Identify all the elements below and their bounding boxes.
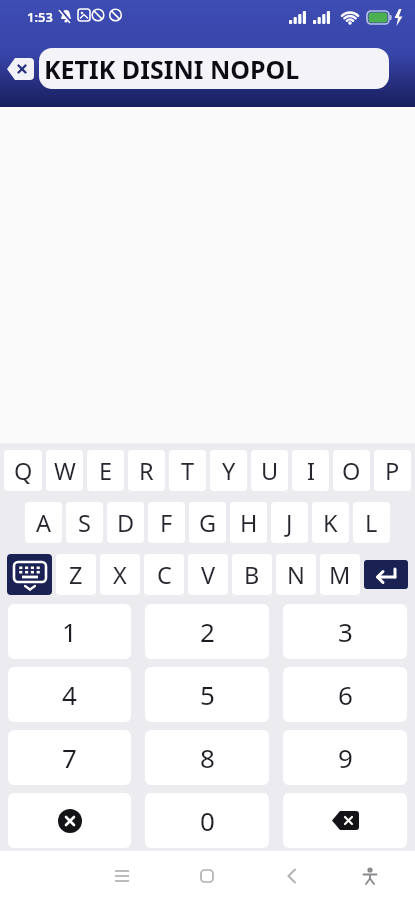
staticText: 1 [62,614,77,649]
button[interactable]: Y [210,450,247,491]
staticText: J [286,507,293,539]
button[interactable]: O [333,450,370,491]
staticText: B [244,559,260,591]
button[interactable]: B [232,554,272,595]
button[interactable] [283,793,407,848]
button[interactable] [185,854,229,898]
button[interactable]: M [320,554,360,595]
staticText: F [160,507,173,539]
staticText: 3 [338,614,353,649]
button[interactable]: E [87,450,124,491]
staticText: 9 [338,740,353,775]
staticText: M [329,559,351,591]
button[interactable]: 1 [8,604,131,659]
button[interactable]: 9 [283,730,407,785]
staticText: I [307,455,315,487]
button[interactable]: 0 [145,793,269,848]
button[interactable]: Z [56,554,96,595]
staticText: G [199,507,217,539]
button[interactable] [7,58,34,80]
staticText: A [36,507,52,539]
button[interactable] [8,793,131,848]
button[interactable]: A [25,502,62,543]
button[interactable] [100,854,144,898]
staticText: 1:53 [27,8,53,26]
button[interactable]: 7 [8,730,131,785]
button[interactable]: KETIK DISINI NOPOL [39,48,389,89]
staticText: 0 [200,803,215,838]
button[interactable]: I [292,450,329,491]
staticText: Z [69,559,83,591]
button[interactable] [7,554,52,595]
staticText: 4 [62,677,77,712]
staticText: KETIK DISINI NOPOL [44,52,300,86]
staticText: U [261,455,279,487]
button[interactable] [348,854,392,898]
button[interactable]: K [312,502,349,543]
staticText: E [99,455,113,487]
staticText: H [240,507,258,539]
staticText: 6 [338,677,353,712]
staticText: W [54,455,76,487]
button[interactable] [364,560,408,589]
button[interactable]: 5 [145,667,269,722]
staticText: O [342,455,361,487]
staticText: D [117,507,135,539]
button[interactable]: V [188,554,228,595]
staticText: K [323,507,338,539]
button[interactable]: F [148,502,185,543]
button[interactable]: 8 [145,730,269,785]
staticText: 2 [200,614,215,649]
button[interactable] [270,854,314,898]
button[interactable]: T [169,450,206,491]
staticText: L [365,507,378,539]
staticText: Y [222,455,236,487]
button[interactable]: C [144,554,184,595]
staticText: R [139,455,154,487]
staticText: S [78,507,91,539]
button[interactable]: J [271,502,308,543]
staticText: P [385,455,400,487]
button[interactable]: 4 [8,667,131,722]
button[interactable]: X [100,554,140,595]
button[interactable]: U [251,450,288,491]
button[interactable]: S [66,502,103,543]
button[interactable]: 3 [283,604,407,659]
button[interactable]: 6 [283,667,407,722]
button[interactable]: W [46,450,83,491]
staticText: Q [14,455,33,487]
staticText: 7 [62,740,77,775]
button[interactable]: D [107,502,144,543]
staticText: N [287,559,305,591]
button[interactable]: 2 [145,604,269,659]
button[interactable]: Q [4,450,42,491]
staticText: T [181,455,195,487]
staticText: V [201,559,216,591]
staticText: X [113,559,127,591]
button[interactable]: L [353,502,390,543]
staticText: 8 [200,740,215,775]
button[interactable]: G [189,502,226,543]
button[interactable]: H [230,502,267,543]
staticText: 5 [200,677,215,712]
button[interactable]: N [276,554,316,595]
button[interactable]: R [128,450,165,491]
staticText: C [157,559,172,591]
button[interactable]: P [374,450,411,491]
